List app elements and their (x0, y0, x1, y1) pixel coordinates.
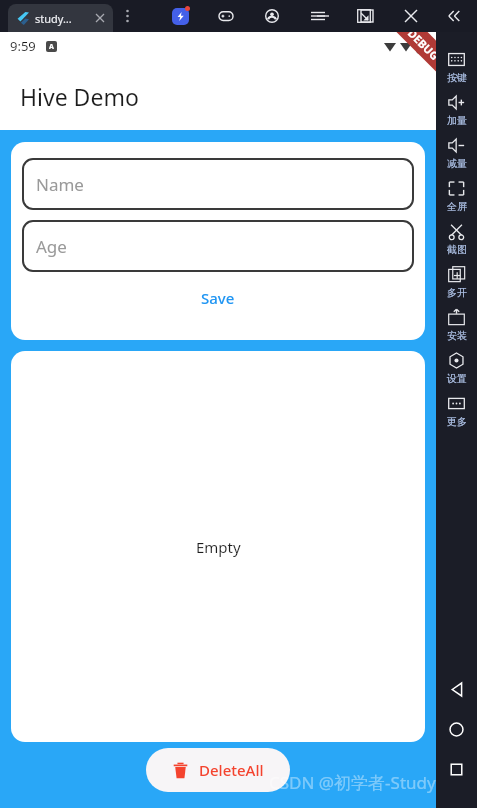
button[interactable]: Multi instance (436, 261, 477, 304)
staticText: DEBUG (405, 32, 436, 63)
button[interactable]: Keyboard (436, 46, 477, 89)
button[interactable]: study… (8, 4, 113, 32)
staticText: 更多 (447, 415, 467, 428)
button[interactable]: Menu (306, 4, 330, 28)
staticText: Save (201, 288, 235, 308)
staticText: 多开 (447, 286, 467, 299)
button[interactable]: Install APK (436, 304, 477, 347)
staticText: 按键 (447, 71, 467, 84)
button[interactable]: DeleteAll (146, 748, 290, 792)
staticText: CSDN @初学者-Study (269, 771, 436, 794)
button[interactable]: Name (22, 158, 414, 210)
staticText: Empty (196, 537, 241, 557)
staticText: 9:59 (10, 37, 36, 55)
staticText: DeleteAll (199, 760, 264, 780)
staticText: 全屏 (447, 200, 467, 213)
button[interactable]: Volume down (436, 132, 477, 175)
staticText: 加量 (447, 114, 467, 127)
button[interactable]: Home (436, 718, 477, 740)
button[interactable]: Boost (168, 4, 192, 28)
button[interactable]: Minimize (311, 4, 335, 28)
button[interactable]: Back (436, 678, 477, 700)
staticText: 安装 (447, 329, 467, 342)
staticText: A (49, 42, 54, 52)
button[interactable]: Age (22, 220, 414, 272)
button[interactable]: Screenshot (436, 218, 477, 261)
button[interactable]: Close tab (95, 13, 105, 23)
staticText: 减量 (447, 157, 467, 170)
button[interactable]: Account (260, 4, 284, 28)
staticText: study… (35, 11, 72, 26)
staticText: Hive Demo (20, 81, 139, 112)
button[interactable]: Volume up (436, 89, 477, 132)
staticText: 截图 (447, 243, 467, 256)
button[interactable]: Settings (436, 347, 477, 390)
staticText: Name (36, 173, 84, 196)
button[interactable]: Collapse (441, 4, 465, 28)
button[interactable]: Recents (436, 758, 477, 780)
button[interactable]: Close (399, 4, 423, 28)
button[interactable]: More (436, 390, 477, 433)
button[interactable]: Save (187, 282, 249, 314)
button[interactable]: Fullscreen (436, 175, 477, 218)
button[interactable]: Maximize (355, 4, 379, 28)
button[interactable]: Resize (352, 4, 376, 28)
button[interactable]: More options (118, 0, 136, 32)
staticText: Age (36, 235, 67, 258)
staticText: 设置 (447, 372, 467, 385)
button[interactable]: Game (214, 4, 238, 28)
